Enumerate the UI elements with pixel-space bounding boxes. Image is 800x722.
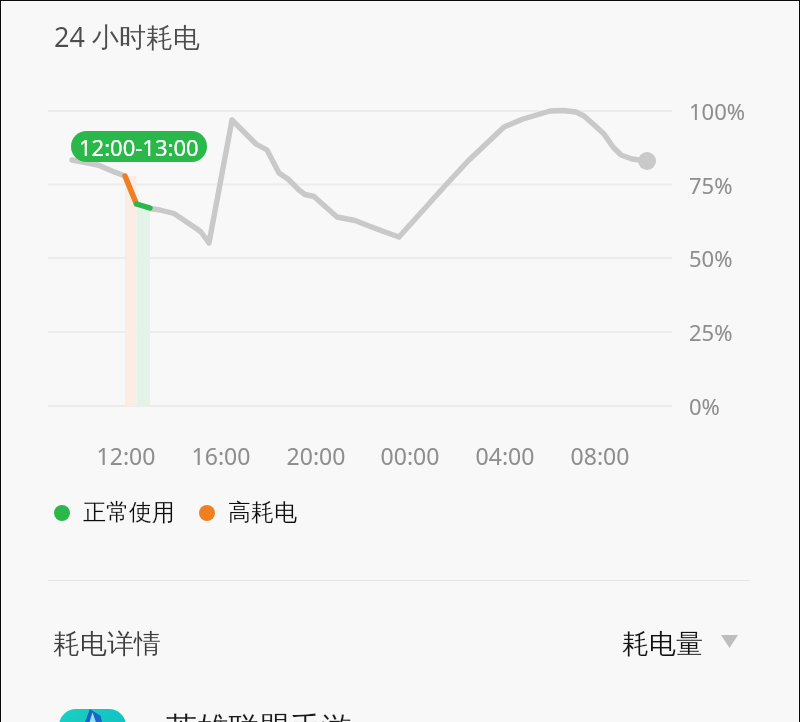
button[interactable]: 12:00-13:00 bbox=[71, 131, 207, 162]
button[interactable]: 耗电量 bbox=[622, 609, 738, 679]
staticText: 高耗电 bbox=[228, 498, 297, 527]
staticText: 英雄联盟手游 bbox=[166, 709, 352, 722]
staticText: 耗电详情 bbox=[53, 627, 161, 661]
staticText: 100% bbox=[689, 96, 746, 126]
other: Sort by power usage bbox=[721, 635, 738, 648]
staticText: 75% bbox=[689, 170, 733, 200]
staticText: 08:00 bbox=[555, 440, 645, 471]
staticText: 04:00 bbox=[460, 440, 550, 471]
staticText: 正常使用 bbox=[83, 498, 175, 527]
staticText: 12:00 bbox=[81, 440, 171, 471]
staticText: 12:00-13:00 bbox=[79, 132, 199, 162]
staticText: 50% bbox=[689, 243, 733, 273]
staticText: 16:00 bbox=[176, 440, 266, 471]
button[interactable]: 耗电详情 bbox=[37, 609, 177, 679]
staticText: 25% bbox=[689, 317, 733, 347]
staticText: 0% bbox=[689, 391, 720, 421]
button[interactable]: 英雄联盟手游 bbox=[59, 709, 800, 722]
staticText: 20:00 bbox=[271, 440, 361, 471]
staticText: 00:00 bbox=[365, 440, 455, 471]
staticText: 耗电量 bbox=[622, 627, 703, 661]
staticText: 24 小时耗电 bbox=[54, 18, 200, 55]
